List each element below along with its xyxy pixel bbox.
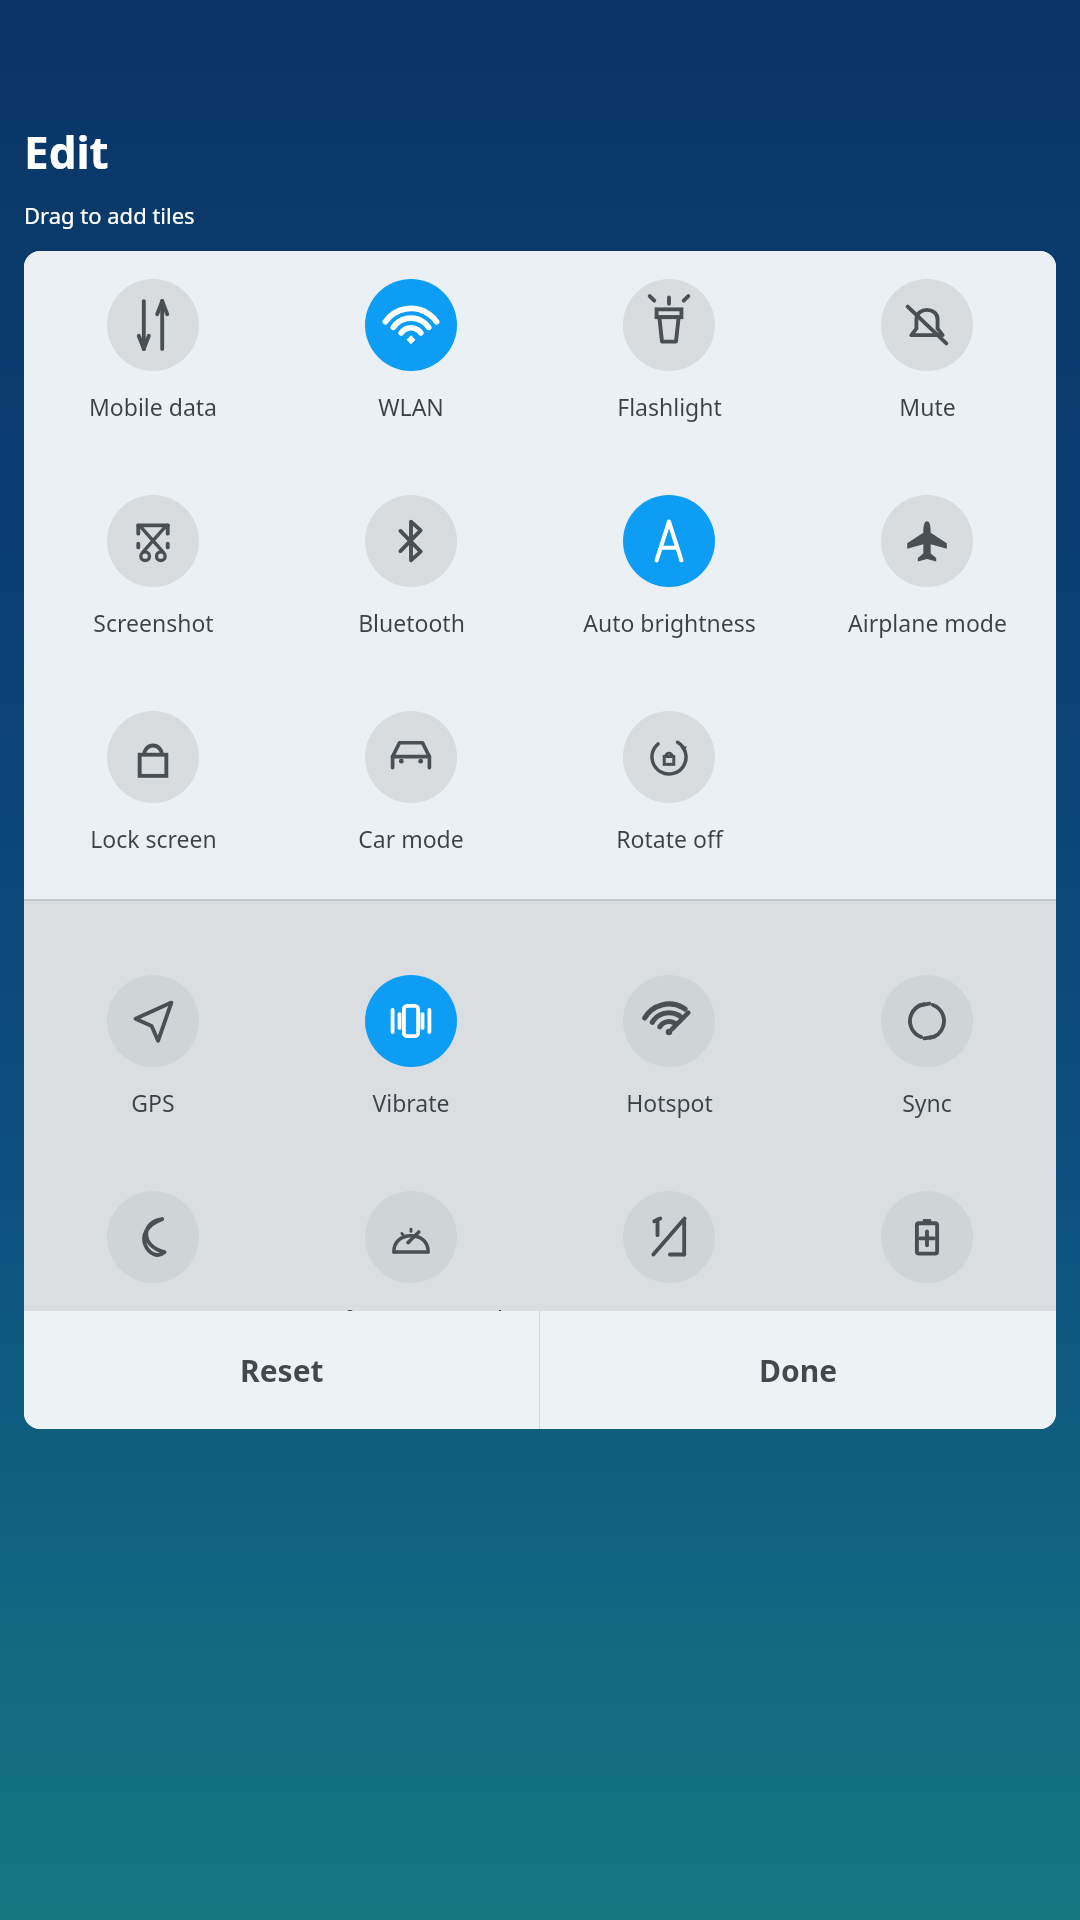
- staticText: Reset: [240, 1350, 324, 1391]
- button[interactable]: GPS: [24, 961, 282, 1118]
- button[interactable]: Hotspot: [540, 961, 798, 1118]
- button[interactable]: Done: [540, 1311, 1056, 1429]
- button[interactable]: Vibrate: [282, 961, 540, 1118]
- button[interactable]: Rotate off: [540, 697, 798, 854]
- staticText: Performance mode: [307, 1303, 516, 1311]
- button[interactable]: Battery saver: [798, 1177, 1056, 1311]
- staticText: Hotspot: [626, 1087, 713, 1118]
- staticText: Mobile data: [89, 391, 217, 422]
- button[interactable]: Mute: [798, 265, 1056, 422]
- staticText: Airplane mode: [848, 607, 1007, 638]
- button[interactable]: Sync: [798, 961, 1056, 1118]
- staticText: Vibrate: [372, 1087, 450, 1118]
- staticText: GPS: [131, 1087, 175, 1118]
- staticText: Rotate off: [616, 823, 723, 854]
- staticText: Flashlight: [617, 391, 722, 422]
- staticText: Edit: [24, 122, 109, 182]
- button[interactable]: Bluetooth: [282, 481, 540, 638]
- button[interactable]: Reset: [24, 1311, 539, 1429]
- button[interactable]: Battery percentage: [540, 1177, 798, 1311]
- staticText: Bluetooth: [358, 607, 465, 638]
- button[interactable]: Car mode: [282, 697, 540, 854]
- staticText: Auto brightness: [583, 607, 756, 638]
- staticText: Screenshot: [93, 607, 214, 638]
- staticText: Sync: [902, 1087, 952, 1118]
- button[interactable]: Flashlight: [540, 265, 798, 422]
- button[interactable]: Auto brightness: [540, 481, 798, 638]
- button[interactable]: Screenshot: [24, 481, 282, 638]
- button[interactable]: Performance mode: [282, 1177, 540, 1311]
- staticText: Drag to add tiles: [24, 200, 195, 230]
- staticText: WLAN: [378, 391, 444, 422]
- staticText: Done: [759, 1350, 838, 1391]
- staticText: Car mode: [358, 823, 464, 854]
- button[interactable]: DND: [24, 1177, 282, 1311]
- button[interactable]: Mobile data: [24, 265, 282, 422]
- staticText: Mute: [899, 391, 956, 422]
- button[interactable]: WLAN: [282, 265, 540, 422]
- button[interactable]: Airplane mode: [798, 481, 1056, 638]
- staticText: Lock screen: [90, 823, 217, 854]
- button[interactable]: Lock screen: [24, 697, 282, 854]
